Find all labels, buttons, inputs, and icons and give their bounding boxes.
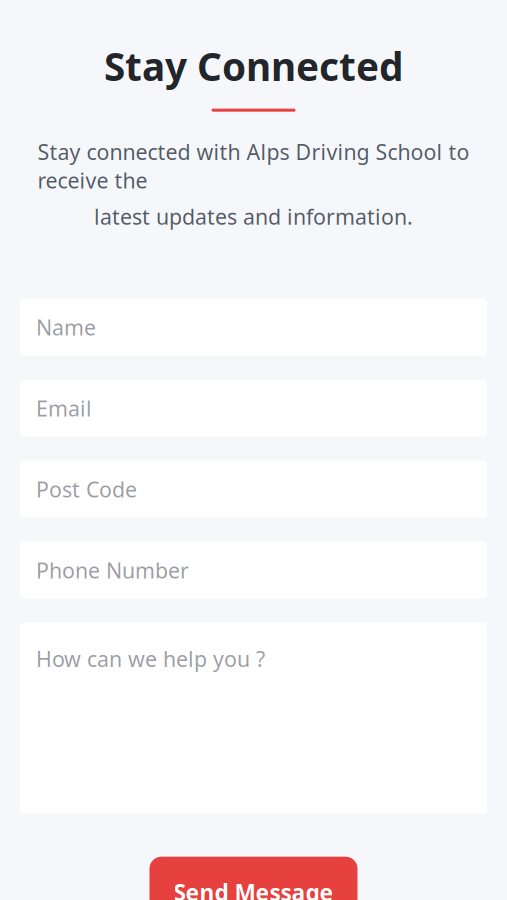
button[interactable]: Email xyxy=(20,380,487,437)
staticText: latest updates and information. xyxy=(94,202,413,231)
staticText: Name xyxy=(36,313,96,341)
button[interactable]: How can we help you ? xyxy=(20,623,487,814)
staticText: How can we help you ? xyxy=(36,645,265,673)
button[interactable]: Name xyxy=(20,299,487,356)
button[interactable]: Post Code xyxy=(20,461,487,518)
button[interactable]: Send Message xyxy=(149,857,357,900)
staticText: Send Message xyxy=(173,877,333,900)
staticText: Email xyxy=(36,394,92,422)
button[interactable]: Phone Number xyxy=(20,542,487,599)
staticText: Phone Number xyxy=(36,556,189,584)
staticText: Stay Connected xyxy=(104,40,403,92)
staticText: Stay connected with Alps Driving School … xyxy=(37,138,469,194)
staticText: Post Code xyxy=(36,475,137,503)
